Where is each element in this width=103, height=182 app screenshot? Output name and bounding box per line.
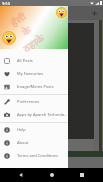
button[interactable]: Apps by Aparsh Technolabs	[0, 108, 68, 121]
staticText: Preferences	[17, 99, 40, 104]
staticText: न थी...???	[1, 94, 19, 100]
staticText: के	[19, 22, 34, 39]
staticText: Apps by Aparsh Technolabs	[17, 112, 68, 117]
button[interactable]: Image/Meme Posts	[0, 80, 68, 93]
staticText: हँसी	[8, 9, 29, 30]
button[interactable]: Help	[0, 123, 68, 136]
staticText: Image/Meme Posts	[17, 84, 54, 89]
button[interactable]: My Favourites	[0, 67, 68, 80]
button[interactable]: Terms and Conditions	[0, 149, 68, 162]
staticText: ठहाके	[20, 30, 48, 55]
staticText: ही बोल	[1, 57, 13, 63]
staticText: My Favourites	[17, 71, 44, 76]
staticText: About	[17, 140, 29, 145]
staticText: एक बार	[1, 39, 14, 45]
staticText: Help	[17, 127, 26, 132]
other: Favourite	[1, 143, 6, 148]
staticText: Terms and Conditions	[17, 153, 58, 158]
button[interactable]: Back	[11, 168, 31, 182]
staticText: All Posts	[17, 58, 33, 63]
button[interactable]: Preferences	[0, 95, 68, 108]
button[interactable]: Home	[42, 168, 62, 182]
button[interactable]: Add post	[90, 9, 99, 18]
button[interactable]: Recent apps	[72, 168, 92, 182]
button[interactable]: All Posts	[0, 54, 68, 67]
staticText: ———	[1, 85, 11, 89]
staticText: 9:56	[2, 1, 10, 6]
button[interactable]: About	[0, 136, 68, 149]
